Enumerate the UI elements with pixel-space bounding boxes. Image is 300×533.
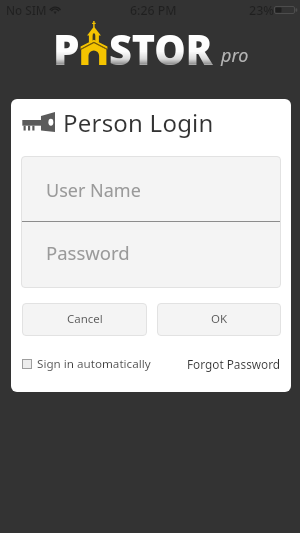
staticText: P [53, 20, 80, 77]
staticText: pro [221, 43, 249, 68]
other: Wi-Fi [49, 6, 61, 14]
staticText: Person Login [63, 106, 214, 139]
button[interactable]: Sign in automatically [19, 352, 151, 375]
staticText: STOR [109, 20, 213, 77]
other: Login [22, 112, 55, 132]
staticText: 6:26 PM [130, 2, 177, 19]
button[interactable]: Password [21, 222, 281, 288]
staticText: Sign in automatically [37, 356, 151, 372]
button[interactable]: Forgot Password [187, 356, 281, 372]
button[interactable]: User Name [21, 156, 281, 221]
staticText: User Name [46, 178, 141, 203]
button[interactable]: OK [157, 303, 281, 336]
button[interactable]: Cancel [22, 303, 147, 336]
staticText: OK [211, 311, 228, 327]
staticText: Password [46, 240, 130, 265]
staticText: Cancel [67, 311, 103, 327]
staticText: No SIM [6, 2, 47, 18]
staticText: 23% [249, 2, 274, 19]
